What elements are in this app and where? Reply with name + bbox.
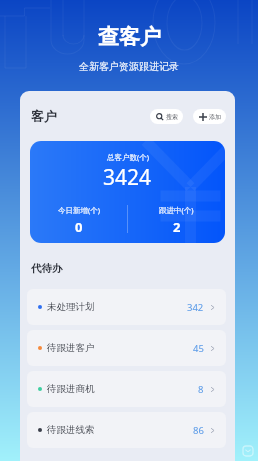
- staticText: 待跟进客户: [47, 342, 95, 354]
- button[interactable]: Messages: [242, 445, 254, 457]
- staticText: 0: [75, 218, 83, 236]
- button[interactable]: 待跟进商机: [27, 371, 226, 407]
- staticText: 全新客户资源跟进记录: [79, 60, 179, 73]
- staticText: 总客户数(个): [107, 152, 149, 162]
- staticText: 45: [193, 342, 204, 355]
- staticText: 跟进中(个): [159, 205, 194, 215]
- staticText: 代待办: [31, 262, 63, 275]
- staticText: 342: [187, 301, 204, 314]
- button[interactable]: 添加: [193, 109, 226, 124]
- staticText: 添加: [209, 113, 221, 121]
- staticText: 客户: [31, 108, 57, 124]
- staticText: 86: [193, 424, 204, 437]
- staticText: 待跟进线索: [47, 424, 95, 436]
- staticText: 搜索: [166, 113, 178, 121]
- staticText: 待跟进商机: [47, 383, 95, 395]
- staticText: 查客户: [98, 24, 161, 50]
- button[interactable]: 待跟进线索: [27, 412, 226, 448]
- button[interactable]: 待跟进客户: [27, 330, 226, 366]
- staticText: 今日新增(个): [58, 205, 100, 215]
- staticText: 2: [173, 218, 181, 236]
- staticText: 未处理计划: [47, 301, 95, 313]
- button[interactable]: 搜索: [150, 109, 183, 124]
- staticText: 8: [198, 383, 204, 396]
- staticText: 3424: [103, 163, 152, 192]
- button[interactable]: 未处理计划: [27, 289, 226, 325]
